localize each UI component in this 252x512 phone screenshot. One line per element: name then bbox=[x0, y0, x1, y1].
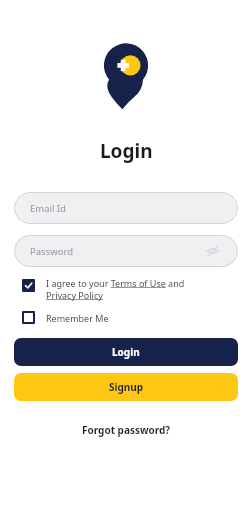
button[interactable]: Forgot password? bbox=[76, 420, 177, 440]
button[interactable]: Checked bbox=[22, 279, 238, 303]
other: Checked bbox=[22, 279, 35, 292]
staticText: Password bbox=[30, 245, 73, 258]
staticText: Email Id bbox=[30, 202, 66, 215]
button[interactable]: Login bbox=[14, 338, 238, 366]
staticText: Login bbox=[100, 138, 153, 164]
other: App logo bbox=[102, 42, 150, 110]
button[interactable]: Show password bbox=[204, 242, 222, 260]
staticText: Privacy Policy bbox=[46, 289, 103, 301]
button[interactable]: Email Id bbox=[14, 192, 238, 224]
staticText: Signup bbox=[109, 380, 144, 394]
staticText: I agree to your Terms of Use and bbox=[46, 277, 185, 289]
staticText: Forgot password? bbox=[82, 423, 171, 437]
other: Unchecked bbox=[22, 311, 35, 324]
staticText: Remember Me bbox=[46, 312, 109, 324]
button[interactable]: Signup bbox=[14, 373, 238, 401]
button[interactable]: Password bbox=[14, 235, 238, 267]
button[interactable]: Unchecked bbox=[22, 311, 238, 324]
staticText: Login bbox=[112, 345, 140, 359]
